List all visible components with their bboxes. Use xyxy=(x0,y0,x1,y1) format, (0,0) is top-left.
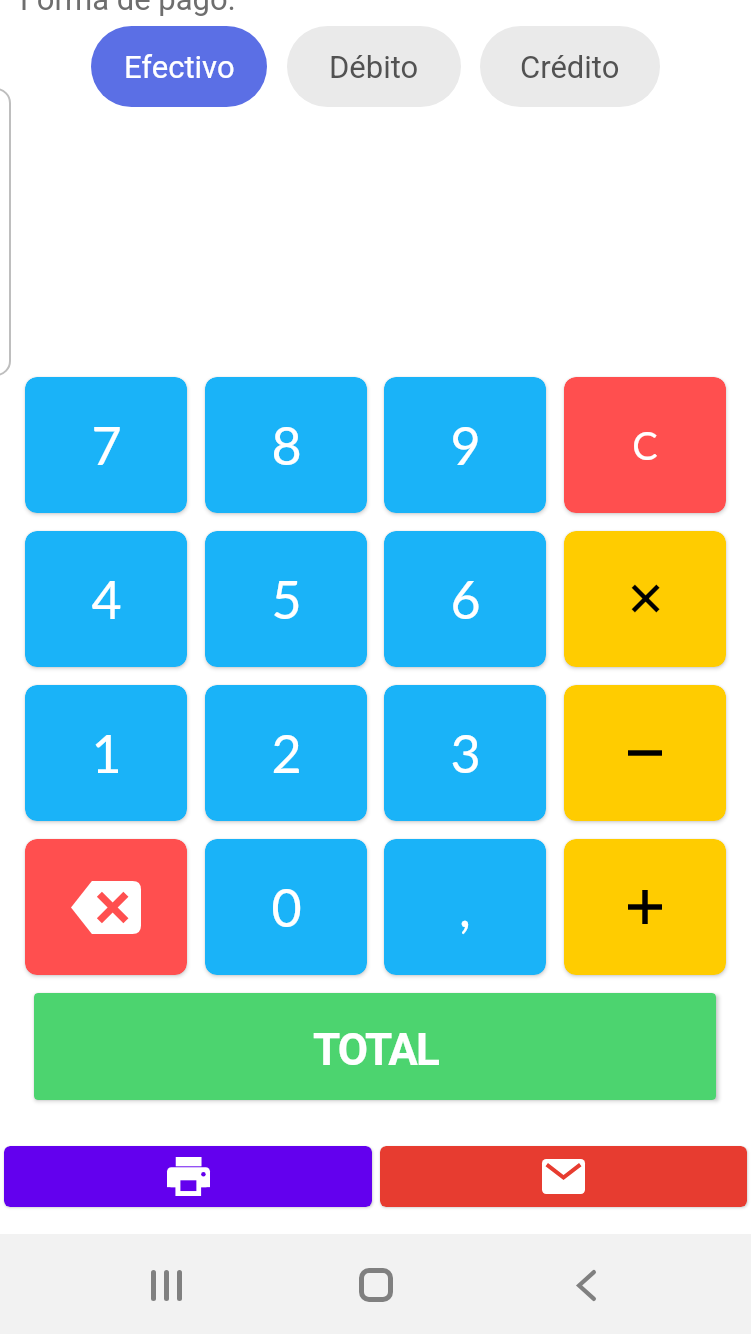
button[interactable]: Plus xyxy=(564,839,726,975)
staticText: 3 xyxy=(450,722,481,784)
button[interactable]: 3 xyxy=(384,685,546,821)
button[interactable]: Recents xyxy=(126,1235,206,1334)
staticText: C xyxy=(632,422,658,468)
staticText: 8 xyxy=(271,414,302,476)
button[interactable]: 8 xyxy=(205,377,367,513)
button[interactable]: Back xyxy=(546,1235,626,1334)
button[interactable]: Send by email xyxy=(380,1146,747,1207)
button[interactable]: Print xyxy=(4,1146,372,1207)
staticText: Crédito xyxy=(520,49,620,85)
button[interactable]: 4 xyxy=(25,531,187,667)
staticText: 2 xyxy=(271,722,302,784)
button[interactable]: , xyxy=(384,839,546,975)
button[interactable]: C xyxy=(564,377,726,513)
staticText: 9 xyxy=(450,414,481,476)
staticText: Débito xyxy=(329,49,419,85)
button[interactable]: 5 xyxy=(205,531,367,667)
staticText: , xyxy=(459,876,471,938)
button[interactable]: TOTAL xyxy=(34,993,716,1100)
button[interactable]: 0 xyxy=(205,839,367,975)
button[interactable]: 2 xyxy=(205,685,367,821)
button[interactable]: 9 xyxy=(384,377,546,513)
button[interactable]: Minus xyxy=(564,685,726,821)
button[interactable]: Backspace xyxy=(25,839,187,975)
button[interactable]: Home xyxy=(336,1235,416,1334)
staticText: 0 xyxy=(271,876,302,938)
staticText: Efectivo xyxy=(124,49,235,85)
button[interactable]: Crédito xyxy=(480,26,660,107)
staticText: 1 xyxy=(91,722,122,784)
button[interactable]: 6 xyxy=(384,531,546,667)
staticText: TOTAL xyxy=(313,1024,438,1076)
button[interactable]: 7 xyxy=(25,377,187,513)
button[interactable]: 1 xyxy=(25,685,187,821)
button[interactable]: ✕ xyxy=(564,531,726,667)
button[interactable]: Débito xyxy=(287,26,461,107)
staticText: Forma de pago: xyxy=(20,0,236,17)
staticText: ✕ xyxy=(625,571,666,627)
button[interactable]: Efectivo xyxy=(91,26,267,107)
staticText: 5 xyxy=(271,568,302,630)
staticText: 4 xyxy=(91,568,122,630)
staticText: 6 xyxy=(450,568,481,630)
staticText: 7 xyxy=(91,414,122,476)
